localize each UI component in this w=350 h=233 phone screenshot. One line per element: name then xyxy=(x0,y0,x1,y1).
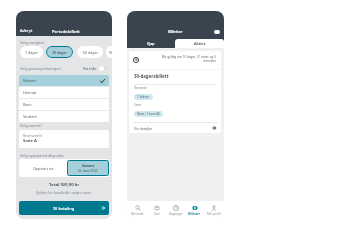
button[interactable]: Aktive xyxy=(175,39,224,48)
button[interactable]: Reisesøk xyxy=(128,201,147,219)
staticText: Total 920,00 kr xyxy=(49,182,80,188)
staticText: Reisesøk xyxy=(131,212,144,216)
button[interactable]: Min profil xyxy=(204,201,223,219)
staticText: 30-dagersbillett xyxy=(134,73,169,79)
button[interactable]: Barn xyxy=(19,99,109,110)
staticText: Sone A xyxy=(23,138,37,144)
button[interactable]: Vis info xyxy=(99,66,108,71)
staticText: Velg varighet xyxy=(20,40,45,45)
staticText: Honnør xyxy=(23,90,37,95)
button[interactable]: Billetter xyxy=(185,201,204,219)
button[interactable]: 90 xyxy=(106,46,112,58)
button[interactable]: Menu xyxy=(214,30,220,34)
staticText: Sone xyxy=(134,103,142,107)
button[interactable]: Avganger xyxy=(166,201,185,219)
staticText: Til betaling xyxy=(53,206,75,211)
staticText: Reisesone(r) xyxy=(23,133,43,137)
staticText: 30 dager xyxy=(52,50,68,55)
button[interactable]: Honnør xyxy=(19,87,109,98)
staticText: Voksen xyxy=(23,78,36,83)
staticText: 02. mars 07:00 xyxy=(78,169,98,173)
button[interactable]: Oppstart nå xyxy=(20,160,67,176)
staticText: Billetter xyxy=(188,212,201,216)
staticText: Avganger xyxy=(169,212,183,216)
staticText: Min profil xyxy=(207,212,221,216)
button[interactable]: Til betaling xyxy=(19,201,109,215)
button[interactable]: 60 dager xyxy=(77,46,103,58)
button[interactable]: Vis detaljer xyxy=(129,122,221,133)
button[interactable]: Voksen xyxy=(19,75,109,86)
staticText: Oppstart nå xyxy=(33,166,54,171)
staticText: Gjelder for buss/trikk i valgte soner xyxy=(36,190,92,195)
staticText: Blir gyldig om 10 dager, 21 timer og 5 m… xyxy=(156,55,216,63)
button[interactable]: Avbryt xyxy=(19,27,34,34)
staticText: 90 xyxy=(109,50,112,55)
staticText: Avbryt xyxy=(20,28,33,33)
button[interactable]: 30 dager xyxy=(46,46,73,58)
staticText: Periodebillett xyxy=(52,28,80,34)
staticText: Senere xyxy=(82,163,95,168)
staticText: Velg sone(r) xyxy=(20,123,42,128)
staticText: 60 dager xyxy=(83,50,98,55)
staticText: Vis detaljer xyxy=(134,126,153,131)
button[interactable]: Student xyxy=(19,111,109,122)
button[interactable]: Kart xyxy=(147,201,166,219)
staticText: Barn xyxy=(23,102,32,107)
button[interactable]: 7 dager xyxy=(20,46,43,58)
staticText: Kjøp xyxy=(147,41,155,46)
staticText: Student xyxy=(23,114,37,119)
staticText: Billetter xyxy=(168,29,183,34)
staticText: Velg oppstartstidspunkt xyxy=(20,153,64,158)
staticText: Kart xyxy=(154,212,160,216)
staticText: Aktive xyxy=(194,41,206,46)
staticText: Reisende xyxy=(134,86,147,90)
button[interactable]: Reisesone(r) xyxy=(19,130,109,148)
staticText: Velg passasjerkategori xyxy=(20,66,62,71)
staticText: 7 dager xyxy=(25,50,38,55)
button[interactable]: Senere xyxy=(67,160,109,176)
button[interactable]: Kjøp xyxy=(127,39,175,48)
staticText: Reise i 1 sone (A) xyxy=(137,112,160,116)
staticText: Vis info xyxy=(83,66,97,71)
staticText: 1 Voksen xyxy=(137,95,150,99)
